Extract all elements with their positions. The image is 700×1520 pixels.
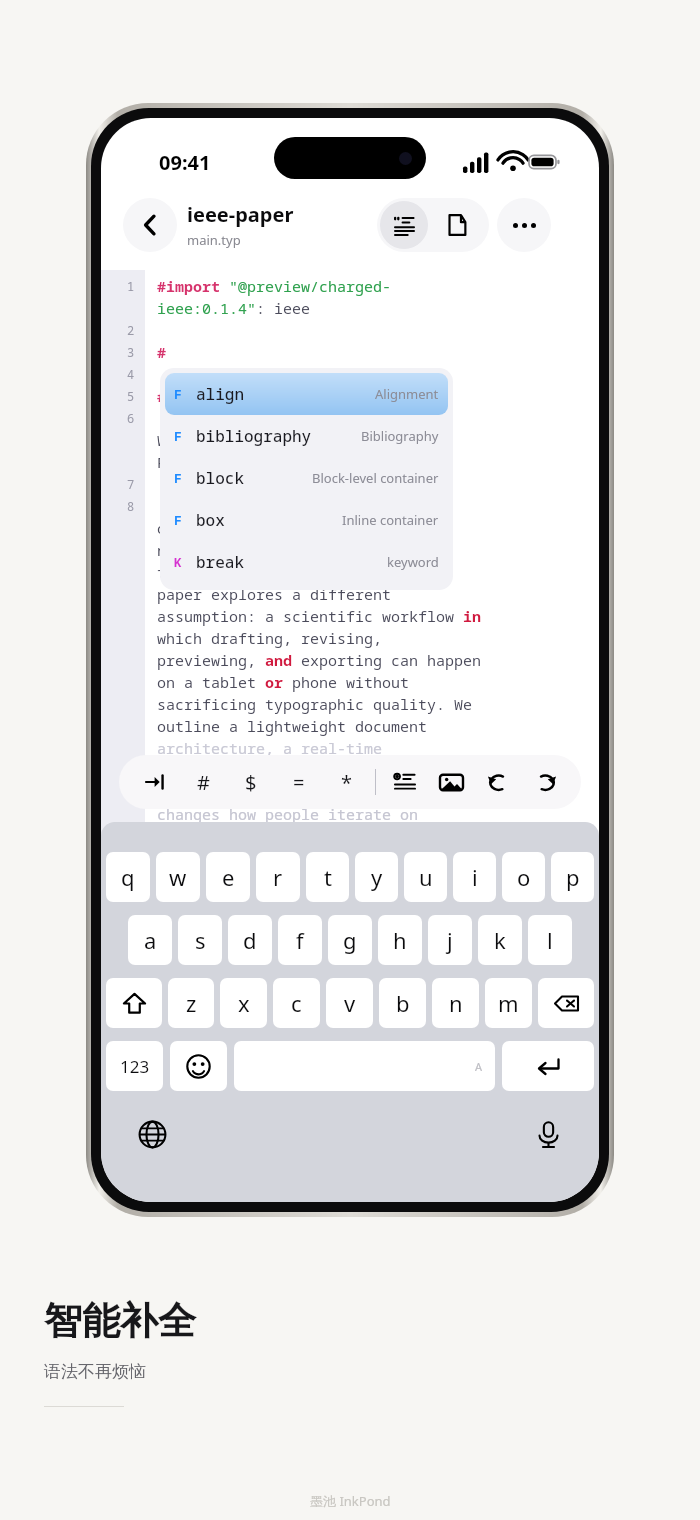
staticText: 5	[127, 388, 135, 404]
button[interactable]: m	[485, 978, 532, 1028]
button[interactable]: F	[165, 373, 448, 415]
button[interactable]: b	[379, 978, 426, 1028]
button[interactable]: Backspace	[538, 978, 594, 1028]
staticText: s	[195, 925, 206, 955]
staticText: box	[196, 509, 225, 531]
staticText: assumption: a scientific workflow in	[157, 606, 482, 626]
button[interactable]: e	[206, 852, 250, 902]
staticText: Inline container	[342, 511, 439, 529]
staticText: m	[498, 988, 519, 1018]
button[interactable]: #	[179, 755, 227, 809]
button[interactable]: K	[165, 541, 448, 583]
button[interactable]: c	[273, 978, 320, 1028]
staticText: sensitive feedback loops, and	[157, 760, 419, 780]
button[interactable]: F	[165, 457, 448, 499]
staticText: changes how people iterate on	[157, 804, 419, 824]
staticText: align	[196, 383, 245, 405]
button[interactable]: w	[156, 852, 200, 902]
staticText: 6	[127, 410, 135, 426]
button[interactable]: Emoji	[170, 1041, 227, 1091]
button[interactable]: Language	[131, 1113, 173, 1155]
staticText: F	[174, 385, 182, 403]
staticText: c	[291, 988, 302, 1018]
staticText: ieee-paper	[187, 201, 294, 228]
staticText: ieee:0.1.4": ieee	[157, 298, 311, 318]
button[interactable]: s	[178, 915, 222, 965]
button[interactable]: Outline	[380, 201, 428, 249]
button[interactable]: r	[256, 852, 300, 902]
button[interactable]: Undo	[475, 755, 522, 809]
button[interactable]: f	[278, 915, 322, 965]
button[interactable]: $	[227, 755, 275, 809]
button[interactable]: o	[502, 852, 545, 902]
button[interactable]: v	[326, 978, 373, 1028]
staticText: Bibliography	[361, 427, 439, 445]
button[interactable]: Preview	[431, 199, 483, 251]
staticText: d	[243, 925, 257, 955]
button[interactable]: y	[355, 852, 398, 902]
staticText: 09:41	[159, 149, 211, 176]
button[interactable]: k	[478, 915, 522, 965]
staticText: sacrificing typographic quality. We	[157, 694, 473, 714]
staticText: tools are	[157, 496, 428, 516]
button[interactable]: A	[234, 1041, 495, 1091]
button[interactable]: n	[432, 978, 479, 1028]
button[interactable]: q	[106, 852, 150, 902]
button[interactable]: 123	[106, 1041, 163, 1091]
staticText: j	[447, 925, 453, 955]
button[interactable]: *	[323, 755, 370, 809]
button[interactable]: u	[404, 852, 447, 902]
button[interactable]: d	[228, 915, 272, 965]
staticText: b	[396, 988, 410, 1018]
button[interactable]: F	[165, 415, 448, 457]
staticText: outline a lightweight document	[157, 716, 428, 736]
staticText: Alignment	[375, 385, 439, 403]
staticText: $	[245, 769, 257, 796]
button[interactable]: Shift	[106, 978, 162, 1028]
button[interactable]: Return	[502, 1041, 594, 1091]
staticText: paper explores a different	[157, 584, 392, 604]
button[interactable]: =	[275, 755, 323, 809]
staticText: A	[475, 1059, 483, 1074]
button[interactable]: i	[453, 852, 496, 902]
button[interactable]: j	[428, 915, 472, 965]
button[interactable]: Tab	[131, 755, 179, 809]
staticText: main.typ	[187, 231, 241, 249]
staticText: =	[293, 769, 305, 796]
staticText: 语法不再烦恼	[44, 1361, 146, 1382]
staticText: z	[186, 988, 197, 1018]
staticText: f	[296, 925, 304, 955]
staticText: block	[196, 467, 245, 489]
staticText: #	[197, 769, 210, 796]
button[interactable]: g	[328, 915, 372, 965]
staticText: 123	[120, 1055, 150, 1078]
button[interactable]: h	[378, 915, 422, 965]
staticText: discuss why fast local compilation	[157, 782, 464, 802]
button[interactable]: Back	[123, 198, 177, 252]
button[interactable]: x	[220, 978, 267, 1028]
button[interactable]: a	[128, 915, 172, 965]
staticText: bibliography	[196, 425, 312, 447]
button[interactable]: l	[528, 915, 572, 965]
staticText: previewing, and exporting can happen	[157, 650, 482, 670]
button[interactable]: z	[168, 978, 214, 1028]
staticText: 智能补全	[44, 1297, 196, 1345]
button[interactable]: Insert list	[381, 755, 428, 809]
staticText: t	[324, 862, 332, 892]
staticText: F	[174, 469, 182, 487]
button[interactable]: t	[306, 852, 349, 902]
staticText: 7	[127, 476, 135, 492]
button[interactable]: Dictation	[527, 1113, 569, 1155]
staticText: F	[174, 427, 182, 445]
staticText: n	[449, 988, 463, 1018]
staticText: e	[222, 862, 235, 892]
staticText: 墨池 InkPond	[310, 1492, 391, 1510]
button[interactable]: More options	[497, 198, 551, 252]
staticText: F	[174, 511, 182, 529]
staticText: n writing	[157, 540, 392, 560]
button[interactable]: Insert image	[428, 755, 475, 809]
button[interactable]: Redo	[522, 755, 569, 809]
button[interactable]: F	[165, 499, 448, 541]
button[interactable]: p	[551, 852, 594, 902]
staticText: 8	[127, 498, 135, 514]
